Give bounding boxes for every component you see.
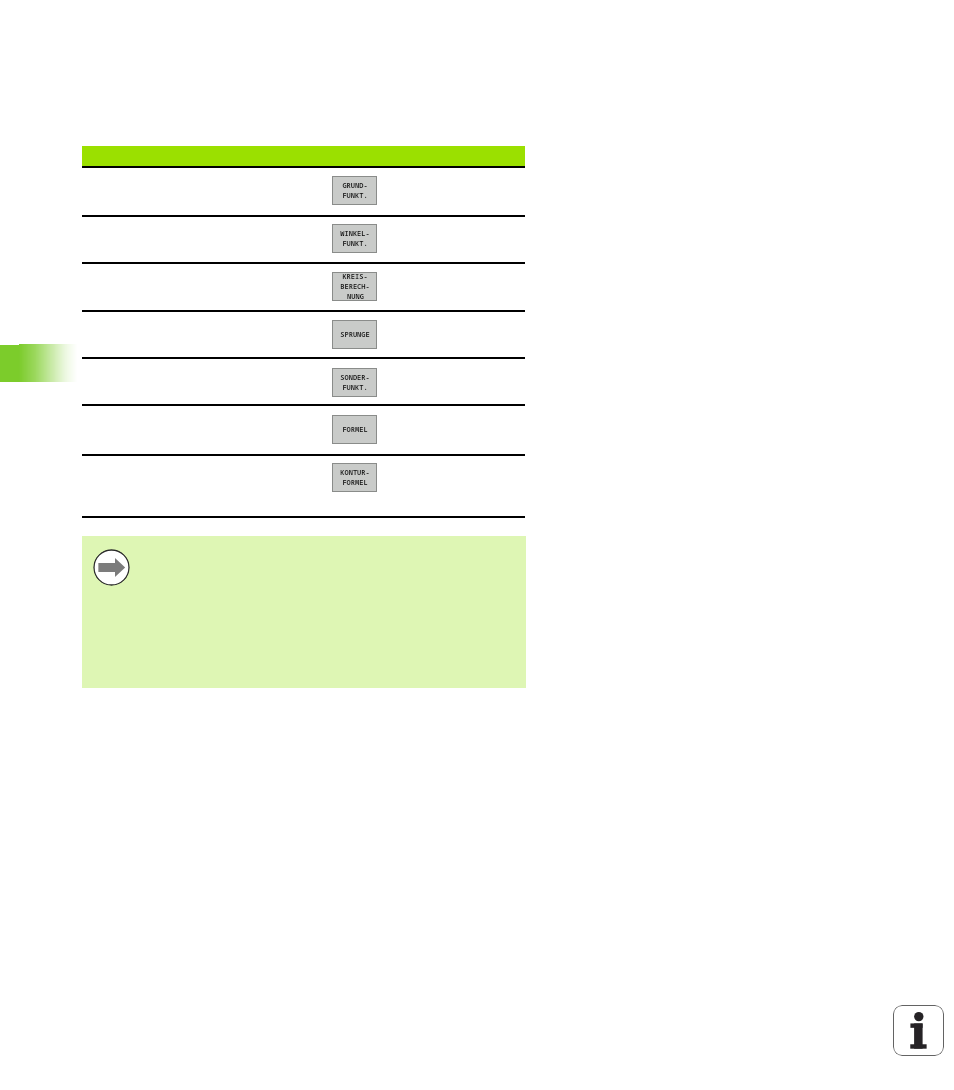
staticText: FUNKT. bbox=[342, 383, 368, 393]
button[interactable] bbox=[82, 217, 525, 262]
button[interactable]: Information bbox=[893, 1005, 944, 1056]
button[interactable]: FORMEL bbox=[332, 415, 377, 444]
button[interactable]: KONTUR- bbox=[332, 463, 377, 492]
staticText: NUNG bbox=[347, 292, 364, 301]
staticText: BERECH- bbox=[340, 282, 370, 292]
button[interactable] bbox=[82, 456, 525, 516]
button[interactable] bbox=[82, 264, 525, 310]
button[interactable]: GRUND- bbox=[332, 176, 377, 205]
staticText: WINKEL- bbox=[340, 229, 370, 239]
button[interactable]: SONDER- bbox=[332, 368, 377, 397]
staticText: FUNKT. bbox=[342, 239, 368, 249]
staticText: SONDER- bbox=[340, 373, 370, 383]
staticText: FORMEL bbox=[342, 425, 368, 435]
staticText: FUNKT. bbox=[342, 191, 368, 201]
button[interactable]: SPRUNGE bbox=[332, 320, 377, 349]
staticText: SPRUNGE bbox=[340, 330, 370, 340]
button[interactable] bbox=[82, 359, 525, 404]
staticText: KREIS- bbox=[342, 272, 368, 282]
button[interactable]: KREIS- bbox=[332, 272, 377, 301]
staticText: FORMEL bbox=[342, 478, 368, 488]
button[interactable] bbox=[82, 312, 525, 357]
button[interactable] bbox=[82, 406, 525, 454]
staticText: KONTUR- bbox=[340, 468, 370, 478]
button[interactable]: Note bbox=[93, 549, 130, 586]
staticText: GRUND- bbox=[342, 181, 368, 191]
button[interactable]: WINKEL- bbox=[332, 224, 377, 253]
button[interactable] bbox=[82, 168, 525, 215]
